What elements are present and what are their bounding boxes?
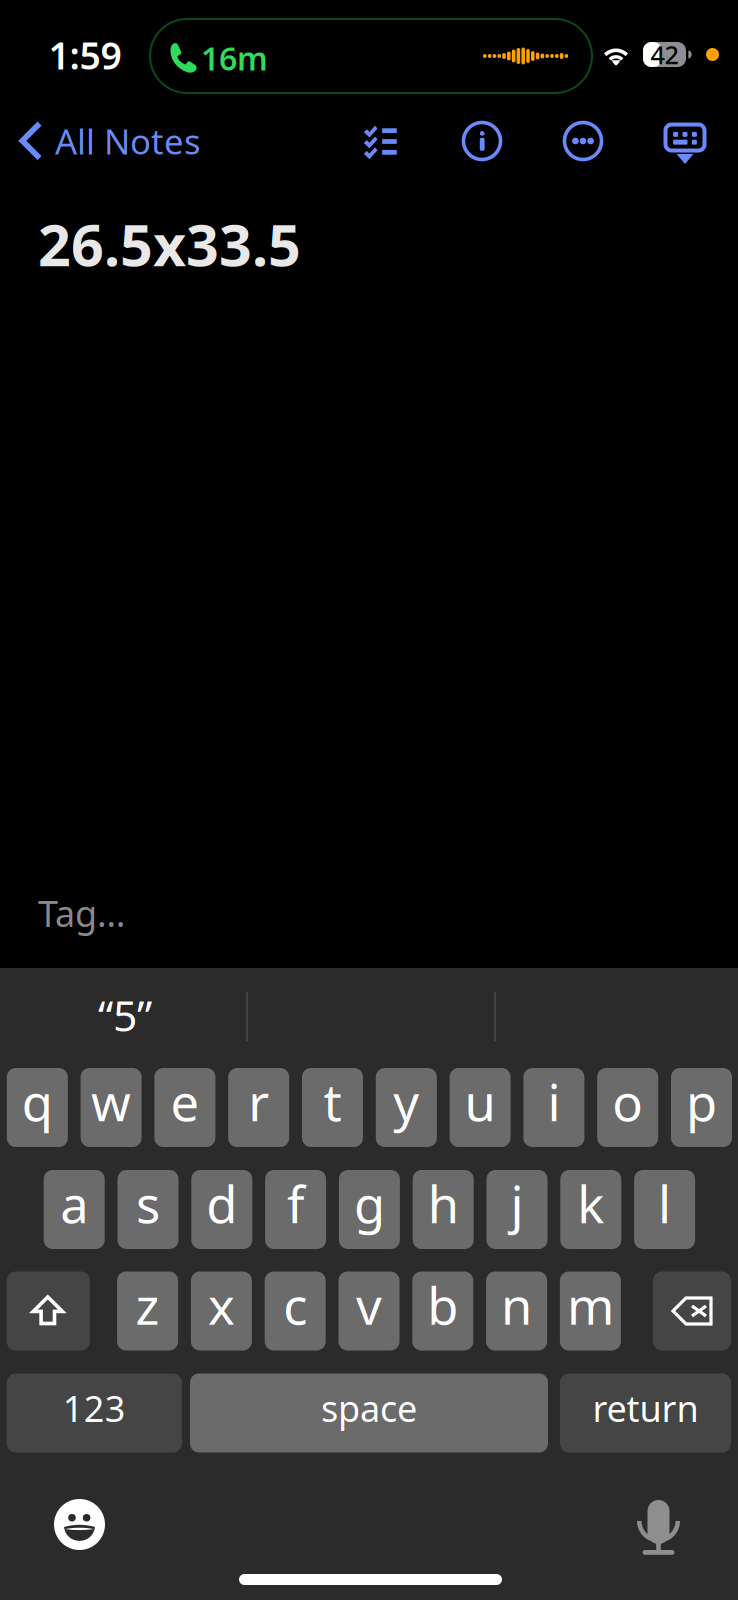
button[interactable]: a xyxy=(44,1170,105,1249)
staticText: y xyxy=(393,1068,419,1135)
button[interactable]: More xyxy=(555,113,611,169)
staticText: “5” xyxy=(98,987,152,1043)
staticText: m xyxy=(567,1271,614,1339)
staticText: Tag… xyxy=(38,889,125,937)
button[interactable]: s xyxy=(117,1170,178,1249)
button[interactable]: h xyxy=(413,1170,474,1249)
staticText: u xyxy=(465,1068,496,1135)
button[interactable]: o xyxy=(597,1068,658,1147)
staticText: h xyxy=(428,1170,459,1237)
button[interactable]: r xyxy=(228,1068,289,1147)
button[interactable]: y xyxy=(376,1068,437,1147)
staticText: 42 xyxy=(650,38,678,71)
staticText: p xyxy=(686,1068,717,1135)
button[interactable]: Dictation xyxy=(635,1494,680,1550)
button[interactable]: z xyxy=(117,1271,178,1350)
staticText: t xyxy=(323,1068,341,1135)
staticText: k xyxy=(577,1170,604,1237)
staticText: z xyxy=(136,1271,160,1339)
button[interactable]: n xyxy=(486,1271,547,1350)
button[interactable]: All Notes xyxy=(18,113,233,169)
button[interactable]: Checklist xyxy=(353,113,409,169)
staticText: v xyxy=(356,1271,382,1339)
button[interactable]: g xyxy=(339,1170,400,1249)
button[interactable]: e xyxy=(154,1068,215,1147)
staticText: 123 xyxy=(63,1384,126,1432)
staticText: c xyxy=(283,1271,307,1339)
staticText: g xyxy=(354,1170,385,1237)
button[interactable]: m xyxy=(560,1271,621,1350)
button[interactable]: return xyxy=(560,1373,731,1452)
button[interactable]: b xyxy=(412,1271,473,1350)
button[interactable]: 123 xyxy=(7,1373,182,1452)
staticText: 1:59 xyxy=(48,30,121,80)
button[interactable]: j xyxy=(486,1170,547,1249)
button[interactable]: Hide Keyboard xyxy=(657,113,713,169)
button[interactable]: Info xyxy=(454,113,510,169)
button[interactable]: i xyxy=(523,1068,584,1147)
staticText: i xyxy=(547,1068,560,1135)
button[interactable]: k xyxy=(560,1170,621,1249)
staticText: 16m xyxy=(201,37,268,79)
staticText: a xyxy=(60,1170,88,1237)
button[interactable]: c xyxy=(265,1271,326,1350)
button[interactable]: Shift xyxy=(7,1271,90,1350)
staticText: All Notes xyxy=(55,118,201,164)
button[interactable]: d xyxy=(191,1170,252,1249)
staticText: x xyxy=(208,1271,235,1339)
staticText: e xyxy=(170,1068,199,1135)
button[interactable]: Delete xyxy=(653,1271,731,1350)
staticText: w xyxy=(91,1068,131,1135)
staticText: n xyxy=(501,1271,532,1339)
staticText: o xyxy=(612,1068,643,1135)
button[interactable]: p xyxy=(671,1068,732,1147)
staticText: space xyxy=(321,1384,417,1432)
staticText: return xyxy=(592,1384,698,1432)
staticText: r xyxy=(248,1068,269,1135)
staticText: l xyxy=(658,1170,671,1237)
staticText: s xyxy=(136,1170,160,1237)
button[interactable]: l xyxy=(634,1170,695,1249)
staticText: 26.5x33.5 xyxy=(38,206,301,282)
staticText: q xyxy=(22,1068,53,1135)
button[interactable]: space xyxy=(190,1373,548,1452)
staticText: f xyxy=(287,1170,304,1237)
staticText: j xyxy=(510,1170,523,1237)
button[interactable]: w xyxy=(81,1068,142,1147)
button[interactable]: u xyxy=(450,1068,511,1147)
button[interactable]: v xyxy=(338,1271,399,1350)
button[interactable]: Emoji xyxy=(54,1499,105,1550)
button[interactable]: Tag… xyxy=(38,890,338,936)
staticText: d xyxy=(206,1170,237,1237)
button[interactable]: x xyxy=(191,1271,252,1350)
button[interactable]: q xyxy=(7,1068,68,1147)
button[interactable]: f xyxy=(265,1170,326,1249)
staticText: b xyxy=(427,1271,458,1339)
button[interactable]: t xyxy=(302,1068,363,1147)
